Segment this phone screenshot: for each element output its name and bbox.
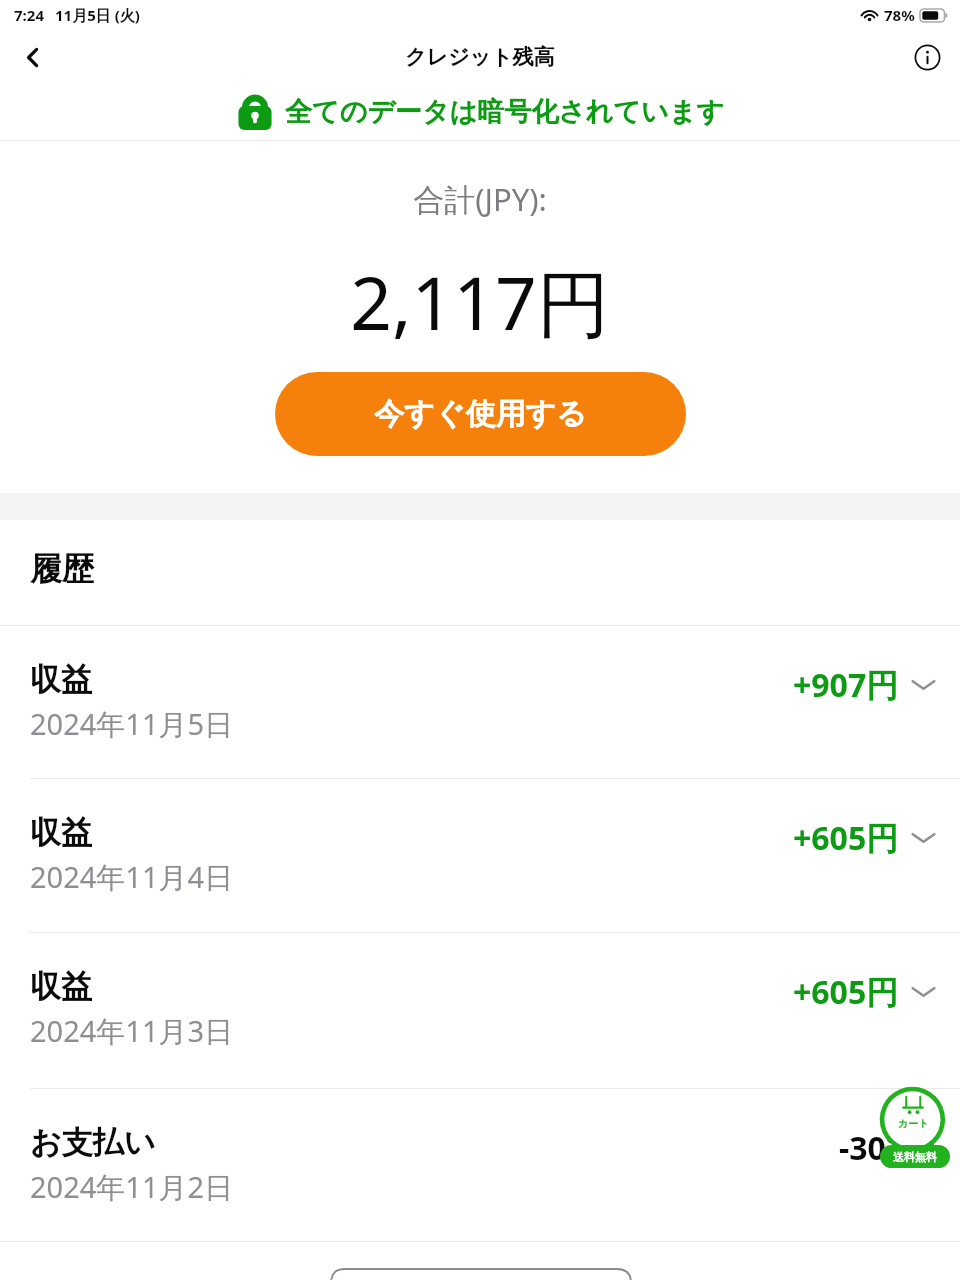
- button[interactable]: カート 送料無料: [872, 1086, 958, 1174]
- staticText: +605円: [793, 816, 899, 860]
- staticText: 全てのデータは暗号化されています: [285, 95, 724, 129]
- staticText: 7:24: [14, 5, 44, 25]
- button[interactable]: 収益: [0, 778, 960, 931]
- staticText: 収益: [30, 813, 92, 852]
- staticText: カート: [898, 1117, 929, 1130]
- staticText: 今すぐ使用する: [374, 395, 587, 433]
- button[interactable]: 収益: [0, 625, 960, 778]
- staticText: 2024年11月5日: [30, 704, 234, 744]
- staticText: 収益: [30, 660, 92, 699]
- staticText: お支払い: [30, 1123, 156, 1162]
- staticText: 2,117円: [0, 252, 960, 352]
- staticText: 履歴: [30, 549, 94, 589]
- staticText: 2024年11月4日: [30, 857, 234, 897]
- staticText: 2024年11月3日: [30, 1011, 234, 1051]
- button[interactable]: Info: [894, 30, 960, 84]
- staticText: 収益: [30, 967, 92, 1006]
- staticText: 2024年11月2日: [30, 1167, 234, 1207]
- staticText: 11月5日 (火): [55, 5, 140, 25]
- button[interactable]: お支払い: [0, 1088, 960, 1241]
- staticText: 送料無料: [893, 1150, 937, 1164]
- button[interactable]: Back: [0, 30, 64, 84]
- staticText: -302円: [839, 1126, 937, 1170]
- staticText: +907円: [793, 663, 899, 707]
- staticText: +605円: [793, 970, 899, 1014]
- staticText: クレジット残高: [405, 44, 555, 70]
- button[interactable]: 収益: [0, 932, 960, 1085]
- button[interactable]: 今すぐ使用する: [275, 372, 686, 456]
- staticText: 78%: [884, 5, 915, 25]
- staticText: 合計(JPY):: [0, 178, 960, 220]
